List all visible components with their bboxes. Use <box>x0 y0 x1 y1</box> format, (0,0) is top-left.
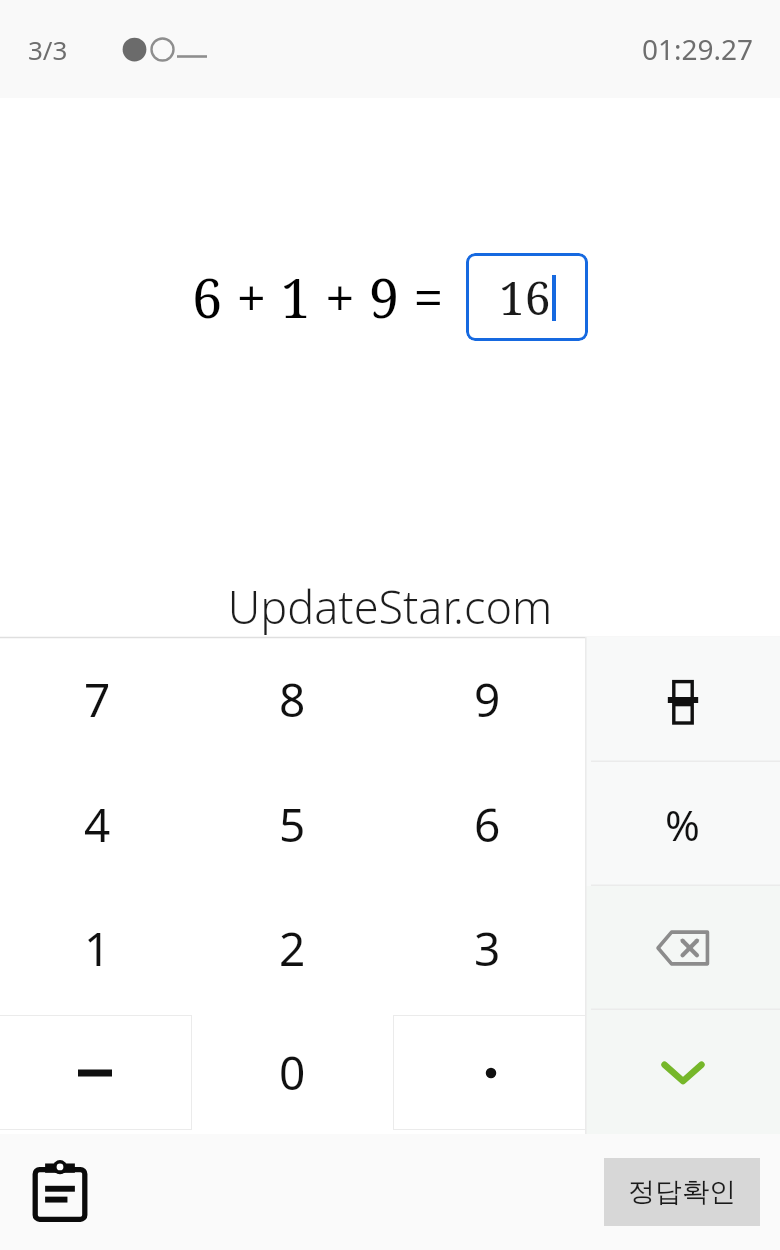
staticText: 16 <box>499 266 551 329</box>
button[interactable]: 2 <box>195 886 390 1010</box>
button[interactable]: 3 <box>390 886 585 1010</box>
button[interactable]: 16 <box>466 253 588 341</box>
button[interactable] <box>0 1015 192 1130</box>
staticText: 7 <box>84 668 111 731</box>
staticText: 3 <box>474 917 501 980</box>
button[interactable] <box>585 637 780 762</box>
button[interactable]: 정답확인 <box>604 1158 760 1226</box>
staticText: % <box>665 796 700 853</box>
staticText: 정답확인 <box>628 1175 736 1209</box>
button[interactable]: Backspace <box>585 886 780 1010</box>
button[interactable]: 9 <box>390 637 585 762</box>
staticText: 0 <box>279 1041 306 1104</box>
button[interactable]: 7 <box>0 637 195 762</box>
staticText: 9 <box>474 668 501 731</box>
staticText: 6 + 1 + 9 = <box>192 260 444 334</box>
button[interactable]: Hide keyboard <box>585 1010 780 1134</box>
staticText: 4 <box>84 793 111 856</box>
button[interactable]: 1 <box>0 886 195 1010</box>
staticText: UpdateStar.com <box>0 576 780 637</box>
staticText: 01:29.27 <box>642 30 754 68</box>
staticText: 8 <box>279 668 306 731</box>
button[interactable]: 0 <box>195 1010 390 1134</box>
button[interactable]: % <box>585 762 780 886</box>
staticText: 6 <box>474 793 501 856</box>
staticText: 3/3 <box>28 32 68 67</box>
button[interactable]: 4 <box>0 762 195 886</box>
button[interactable]: 5 <box>195 762 390 886</box>
button[interactable]: Notes <box>22 1154 98 1230</box>
staticText: 1 <box>84 917 111 980</box>
button[interactable] <box>393 1015 588 1130</box>
staticText: 5 <box>279 793 306 856</box>
button[interactable]: 6 <box>390 762 585 886</box>
staticText: 2 <box>279 917 306 980</box>
button[interactable]: 8 <box>195 637 390 762</box>
